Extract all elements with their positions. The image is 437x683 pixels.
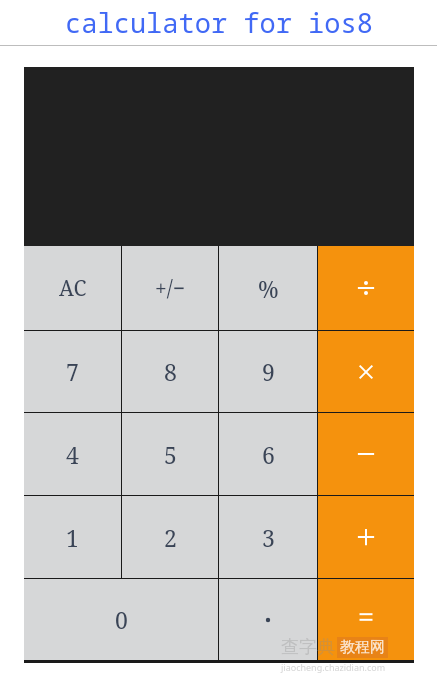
- staticText: 8: [164, 356, 177, 387]
- button[interactable]: [219, 579, 317, 660]
- button[interactable]: 5: [122, 413, 218, 495]
- button[interactable]: Equals: [318, 579, 414, 660]
- button[interactable]: AC: [24, 246, 121, 330]
- staticText: 查字典: [281, 636, 335, 659]
- staticText: 1: [66, 522, 79, 553]
- staticText: 7: [66, 356, 79, 387]
- staticText: 5: [164, 439, 177, 470]
- staticText: 3: [262, 522, 275, 553]
- button[interactable]: 2: [122, 496, 218, 578]
- button[interactable]: +/−: [122, 246, 218, 330]
- button[interactable]: 1: [24, 496, 121, 578]
- staticText: calculator for ios8: [65, 4, 373, 41]
- staticText: 6: [262, 439, 275, 470]
- button[interactable]: %: [219, 246, 317, 330]
- button[interactable]: 4: [24, 413, 121, 495]
- button[interactable]: Minus: [318, 413, 414, 495]
- button[interactable]: 0: [24, 579, 218, 660]
- staticText: 0: [115, 604, 128, 635]
- staticText: AC: [59, 274, 87, 303]
- button[interactable]: Plus: [318, 496, 414, 578]
- button[interactable]: 6: [219, 413, 317, 495]
- button[interactable]: Divide: [318, 246, 414, 330]
- staticText: 2: [164, 522, 177, 553]
- staticText: +/−: [155, 274, 185, 303]
- staticText: 教程网: [340, 638, 385, 657]
- button[interactable]: 9: [219, 331, 317, 412]
- staticText: jiaocheng.chazidian.com: [281, 661, 386, 673]
- staticText: 9: [262, 356, 275, 387]
- staticText: %: [258, 273, 279, 304]
- button[interactable]: 8: [122, 331, 218, 412]
- button[interactable]: 7: [24, 331, 121, 412]
- staticText: 4: [66, 439, 79, 470]
- button[interactable]: 3: [219, 496, 317, 578]
- button[interactable]: Multiply: [318, 331, 414, 412]
